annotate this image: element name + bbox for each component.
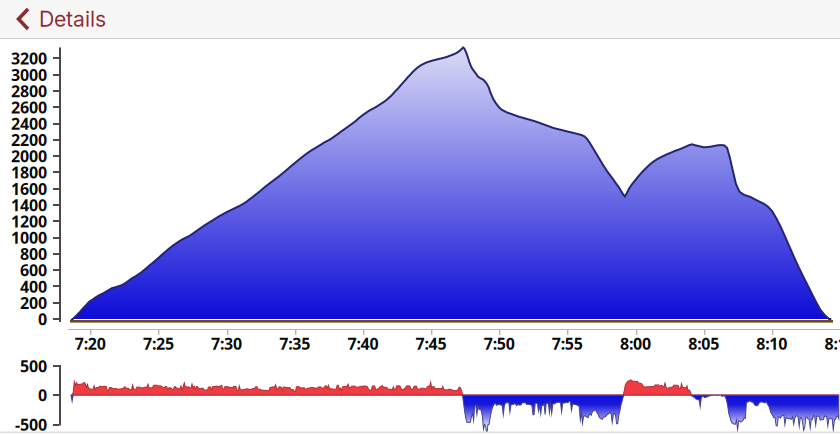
staticText: 7:35 <box>279 333 310 354</box>
staticText: 2600 <box>11 96 47 118</box>
staticText: 800 <box>20 243 47 265</box>
staticText: 600 <box>20 259 47 281</box>
button[interactable]: Details <box>0 0 840 38</box>
staticText: 0 <box>38 308 47 330</box>
staticText: 2400 <box>11 113 47 134</box>
staticText: 0 <box>38 384 47 406</box>
staticText: 1600 <box>11 178 47 200</box>
staticText: 7:40 <box>347 333 378 354</box>
staticText: 8:10 <box>756 333 787 354</box>
staticText: -500 <box>15 414 47 434</box>
staticText: 400 <box>20 275 47 297</box>
staticText: 1200 <box>11 210 47 232</box>
staticText: 7:45 <box>416 333 447 354</box>
staticText: 7:30 <box>211 333 242 354</box>
staticText: 8:05 <box>688 333 719 354</box>
staticText: 3200 <box>11 47 47 69</box>
staticText: 3000 <box>11 64 47 86</box>
staticText: 1800 <box>11 161 47 183</box>
staticText: 7:20 <box>75 333 106 354</box>
staticText: 2800 <box>11 80 47 102</box>
staticText: 1400 <box>11 194 47 216</box>
staticText: 8:00 <box>620 333 651 354</box>
staticText: 8:15 <box>824 333 840 354</box>
staticText: 2000 <box>11 145 47 167</box>
staticText: 2200 <box>11 129 47 151</box>
staticText: 1000 <box>11 227 47 248</box>
staticText: 200 <box>20 292 47 314</box>
staticText: 500 <box>20 355 47 377</box>
staticText: 7:25 <box>143 333 174 354</box>
staticText: 7:55 <box>552 333 583 354</box>
staticText: Details <box>39 6 106 32</box>
staticText: 7:50 <box>484 333 515 354</box>
